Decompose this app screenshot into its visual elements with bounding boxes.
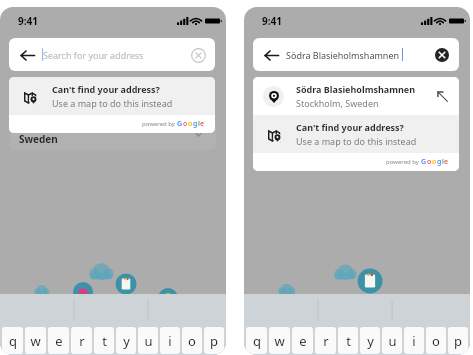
staticText: Can't find your address? [52,83,160,95]
staticText: o [427,157,432,167]
staticText: g [193,119,198,129]
button[interactable]: Can't find your address? [9,77,215,115]
button[interactable]: e [48,327,69,354]
staticText: l [442,157,444,167]
button[interactable]: r [315,327,336,354]
button[interactable]: Clear text [433,46,451,64]
staticText: Stockholm, Sweden [296,97,379,109]
button[interactable]: i [160,327,180,354]
staticText: e [444,157,449,167]
button[interactable]: t [338,327,358,354]
staticText: q [253,332,261,350]
staticText: e [55,332,63,350]
staticText: G [177,119,183,129]
button[interactable]: y [116,327,136,354]
staticText: r [79,332,85,350]
staticText: p [210,332,218,350]
staticText: Search for your address [43,49,144,61]
button[interactable]: i [404,327,424,354]
staticText: y [123,332,130,350]
staticText: Södra Blasieholmshamnen [286,49,400,61]
staticText: w [30,332,41,350]
button[interactable]: u [138,327,158,354]
staticText: o [188,332,196,350]
staticText: Sweden [19,132,58,146]
staticText: g [437,157,442,167]
staticText: t [346,332,351,350]
staticText: o [432,332,440,350]
button[interactable]: p [204,327,224,354]
staticText: q [9,332,17,350]
staticText: Use a map to do this instead [296,135,417,147]
button[interactable]: Södra Blasieholmshamnen [253,77,459,115]
button[interactable]: Back [16,44,38,66]
staticText: o [188,119,193,129]
staticText: o [183,119,188,129]
staticText: i [412,332,416,350]
button[interactable]: Back [260,44,282,66]
staticText: r [323,332,329,350]
staticText: t [102,332,107,350]
button[interactable]: t [94,327,114,354]
staticText: Can't find your address? [296,121,404,133]
staticText: e [200,119,205,129]
button[interactable]: u [382,327,402,354]
staticText: Use a map to do this instead [52,97,173,109]
staticText: l [198,119,200,129]
staticText: i [168,332,172,350]
button[interactable]: Use this suggestion [434,88,450,104]
button[interactable]: r [71,327,92,354]
button[interactable]: Sweden [10,125,216,150]
staticText: Södra Blasieholmshamnen [296,83,416,95]
button[interactable]: Can't find your address? [253,115,459,153]
staticText: o [432,157,437,167]
button[interactable]: p [448,327,468,354]
staticText: 9:41 [262,14,282,28]
button[interactable]: y [360,327,380,354]
button[interactable]: e [292,327,313,354]
staticText: y [367,332,374,350]
button[interactable]: q [2,327,23,354]
staticText: powered by [386,158,421,166]
staticText: 9:41 [18,14,38,28]
button[interactable]: w [25,327,46,354]
staticText: powered by [142,120,177,128]
staticText: p [454,332,462,350]
staticText: w [274,332,285,350]
button[interactable]: o [426,327,446,354]
staticText: e [299,332,307,350]
staticText: G [421,157,427,167]
staticText: u [144,332,153,350]
button[interactable]: o [182,327,202,354]
button[interactable]: w [269,327,290,354]
button[interactable]: Clear text [189,46,207,64]
button[interactable]: q [246,327,267,354]
staticText: u [388,332,397,350]
